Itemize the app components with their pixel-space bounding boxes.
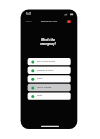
staticText: Fire or Vehicle Issue xyxy=(37,60,55,63)
staticText: Emergency SOS xyxy=(0,20,99,23)
button[interactable]: Crime xyxy=(28,75,71,82)
button[interactable]: Back xyxy=(24,18,33,23)
button[interactable]: SOS emergency call xyxy=(67,20,71,23)
staticText: Medicine or Injury xyxy=(37,69,54,72)
staticText: What's the emergency? xyxy=(0,38,98,46)
button[interactable]: Lost or Trapped xyxy=(28,84,71,91)
staticText: Crime xyxy=(37,77,43,80)
button[interactable]: Medicine or Injury xyxy=(28,67,71,74)
staticText: ‹ Back xyxy=(25,19,32,22)
button[interactable]: Other xyxy=(28,92,71,99)
button[interactable]: Fire or Vehicle Issue xyxy=(28,58,71,65)
staticText: Lost or Trapped xyxy=(37,86,52,89)
staticText: 9:41 xyxy=(26,12,32,16)
staticText: Other xyxy=(37,94,43,97)
